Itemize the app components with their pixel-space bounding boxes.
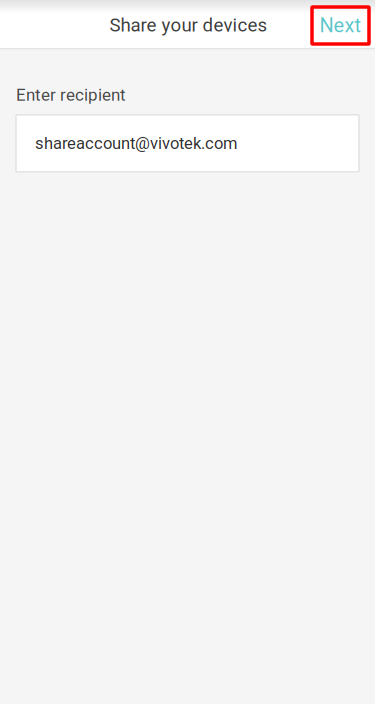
staticText: Next (319, 14, 361, 37)
button[interactable]: shareaccount@vivotek.com (0, 115, 375, 172)
button[interactable]: Next (312, 7, 369, 44)
staticText: shareaccount@vivotek.com (35, 134, 238, 153)
staticText: Share your devices (109, 14, 267, 36)
staticText: Enter recipient (16, 85, 126, 105)
